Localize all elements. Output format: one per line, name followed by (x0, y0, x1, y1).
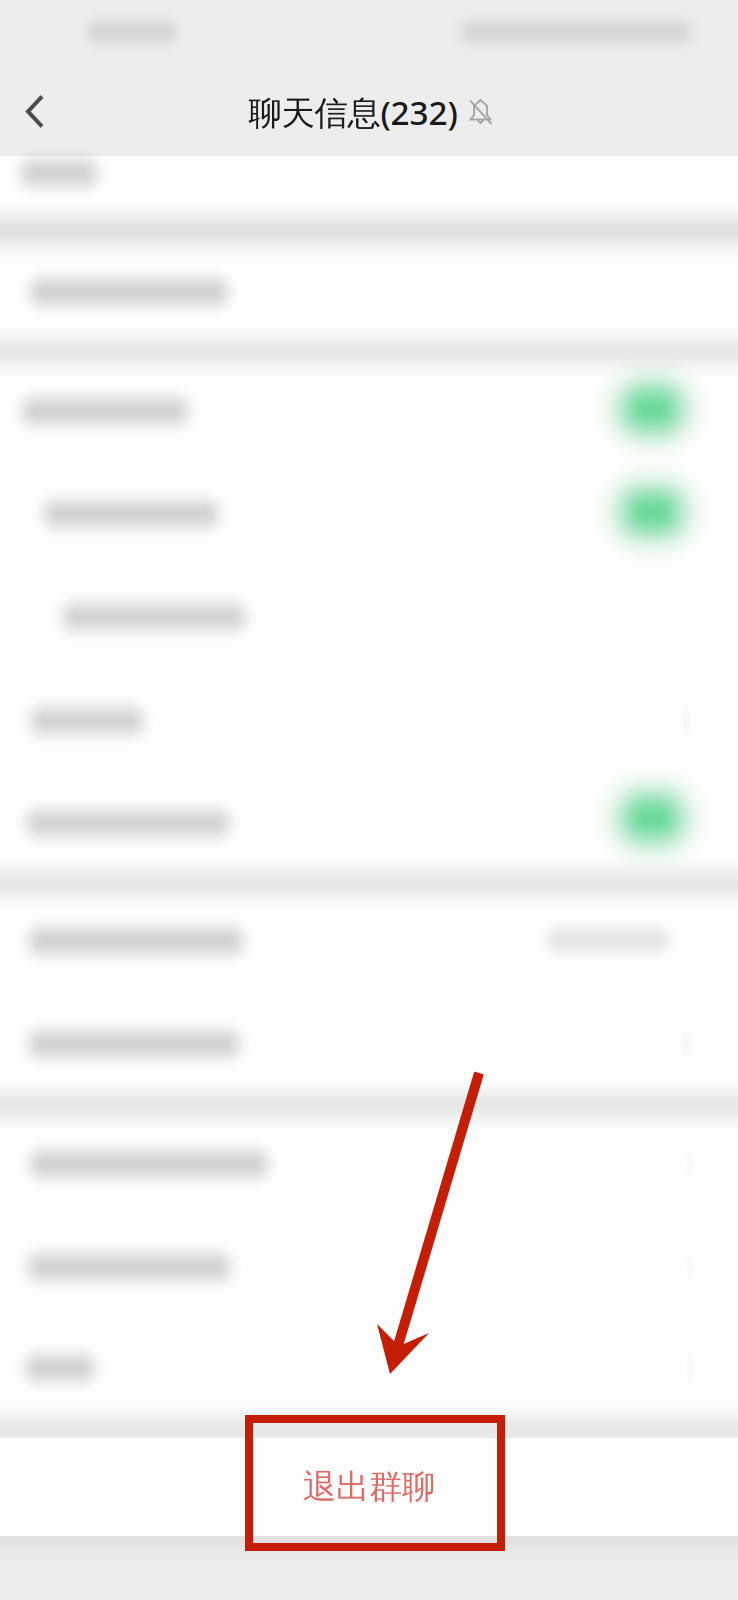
staticText: 聊天信息(232) (248, 90, 457, 134)
button[interactable]: 显示群成员昵称 (0, 771, 738, 874)
button[interactable]: 保存到通讯录 (0, 565, 738, 668)
button[interactable]: 群聊成员 (0, 156, 738, 218)
button[interactable]: 消息免打扰 (0, 359, 738, 462)
button[interactable]: 投诉 (0, 1112, 738, 1215)
button[interactable]: 返回 (0, 68, 72, 156)
button[interactable]: 群聊名称 (0, 243, 738, 343)
button[interactable]: 举报 (0, 1318, 738, 1421)
button[interactable]: 置顶聊天 (0, 462, 738, 565)
staticText: 退出群聊 (303, 1466, 435, 1507)
button[interactable]: 聊天记录 (0, 993, 738, 1096)
button[interactable]: 清空聊天记录 (0, 1215, 738, 1318)
button[interactable]: 消息免打扰 (469, 98, 492, 126)
button[interactable]: 我在本群的昵称 (0, 669, 738, 772)
button[interactable]: 群聊背景 (0, 890, 738, 993)
button[interactable]: 退出群聊 (0, 1438, 738, 1536)
